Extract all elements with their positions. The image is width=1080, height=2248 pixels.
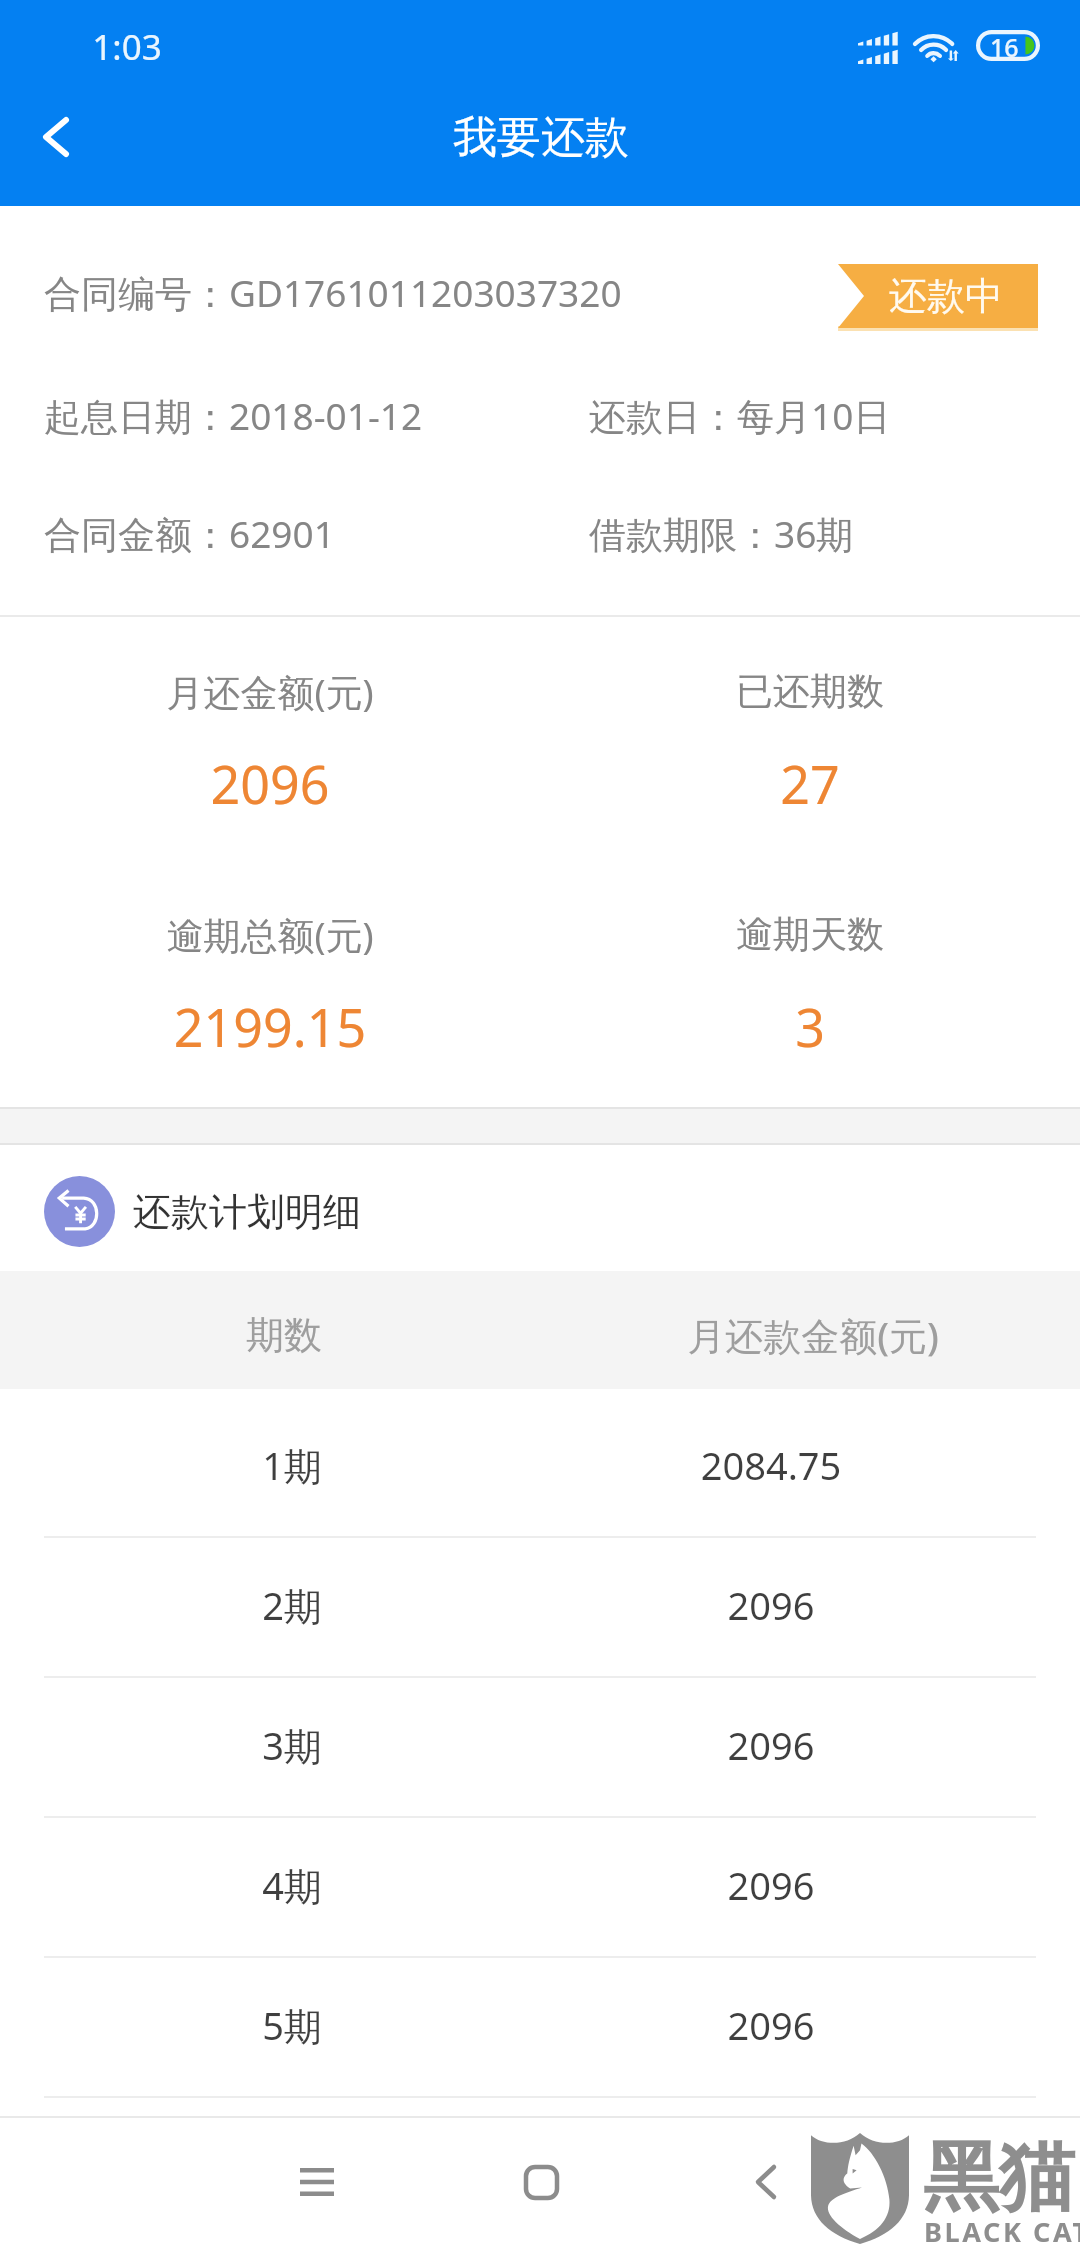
button[interactable]: 2期 — [0, 1529, 1080, 1669]
button[interactable]: 1期 — [0, 1389, 1080, 1529]
staticText: 1:03 — [0, 23, 527, 71]
staticText: 还款日：每月10日 — [589, 390, 891, 441]
staticText: 27 — [410, 748, 1080, 819]
staticText: 我要还款 — [141, 110, 941, 165]
staticText: 还款计划明细 — [133, 1188, 361, 1236]
staticText: 黑猫 — [923, 2130, 1075, 2226]
button[interactable]: 5期 — [0, 1949, 1080, 2089]
staticText: 2096 — [371, 1719, 1080, 1771]
staticText: 3期 — [0, 1719, 692, 1771]
staticText: 2096 — [371, 1859, 1080, 1911]
staticText: 借款期限：36期 — [589, 508, 854, 559]
button[interactable]: Back — [0, 80, 112, 194]
staticText: 2199.15 — [0, 991, 670, 1062]
staticText: 逾期天数 — [410, 911, 1080, 958]
staticText: 2期 — [0, 1579, 692, 1631]
staticText: 3 — [410, 991, 1080, 1062]
staticText: 4期 — [0, 1859, 692, 1911]
staticText: 2096 — [0, 748, 670, 819]
staticText: 期数 — [0, 1311, 684, 1359]
staticText: 合同金额：62901 — [44, 508, 335, 559]
button[interactable]: 还款计划明细 — [0, 1145, 1080, 1271]
staticText: 2096 — [371, 1579, 1080, 1631]
button[interactable]: Menu — [257, 2122, 377, 2242]
button[interactable]: Back — [706, 2122, 826, 2242]
staticText: 合同编号：GD1761011203037320 — [44, 267, 622, 318]
button[interactable]: Home — [481, 2122, 601, 2242]
staticText: 月还金额(元) — [0, 666, 670, 717]
staticText: 1期 — [0, 1439, 692, 1491]
button[interactable]: 4期 — [0, 1809, 1080, 1949]
button[interactable]: 还款中 — [838, 264, 1038, 328]
staticText: 还款中 — [889, 272, 1003, 320]
staticText: 已还期数 — [410, 668, 1080, 715]
staticText: 2084.75 — [371, 1439, 1080, 1491]
staticText: 起息日期：2018-01-12 — [44, 390, 423, 441]
staticText: 2096 — [371, 1999, 1080, 2051]
button[interactable]: 3期 — [0, 1669, 1080, 1809]
staticText: 月还款金额(元) — [413, 1309, 1080, 1361]
staticText: 5期 — [0, 1999, 692, 2051]
staticText: 逾期总额(元) — [0, 909, 670, 960]
staticText: BLACK CAT — [924, 2213, 1080, 2248]
staticText: 16 — [990, 30, 1019, 61]
